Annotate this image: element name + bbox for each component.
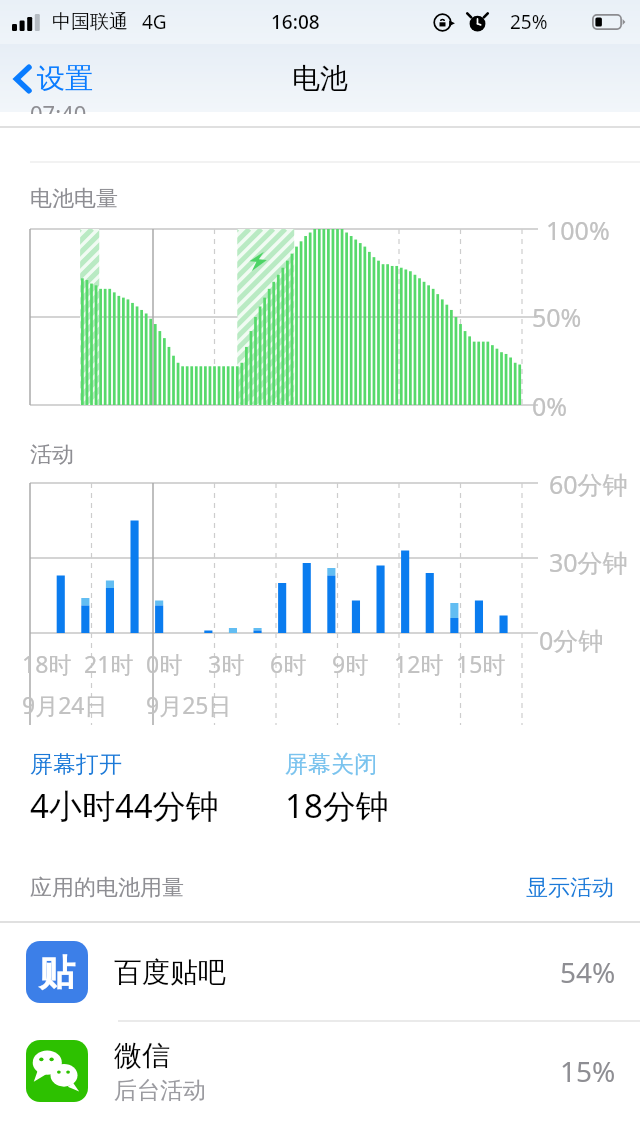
other: Alarm [467,12,488,33]
staticText: 活动 [30,441,74,469]
staticText: 21时 [84,648,134,679]
staticText: 0时 [146,648,183,679]
button[interactable]: 显示活动 [522,868,618,908]
staticText: 显示活动 [526,874,614,902]
staticText: 后台活动 [114,1076,206,1105]
staticText: 07:40 [30,98,87,114]
staticText: 0分钟 [539,623,604,657]
staticText: 18时 [22,648,72,679]
staticText: 18分钟 [285,783,389,828]
staticText: 屏幕关闭 [285,750,377,779]
staticText: 15% [560,1052,616,1090]
staticText: 9月24日 [22,689,108,720]
staticText: 15时 [456,648,506,679]
staticText: 16:08 [271,9,320,35]
staticText: 3时 [208,648,245,679]
staticText: 中国联通 [52,10,128,34]
staticText: 屏幕打开 [30,750,122,779]
staticText: 4G [142,9,167,35]
staticText: 百度贴吧 [114,955,226,990]
staticText: 贴 [39,950,75,995]
button[interactable]: 贴 [0,923,640,1021]
staticText: 54% [560,953,616,991]
button[interactable]: 设置 [0,53,107,104]
staticText: 9时 [332,648,369,679]
staticText: 9月25日 [146,689,232,720]
staticText: 电池 [292,61,348,96]
staticText: 25% [510,9,548,35]
staticText: 30分钟 [549,545,628,579]
staticText: 50% [532,300,582,334]
other: Battery 25 percent [592,14,626,30]
staticText: 设置 [37,61,93,96]
staticText: 0% [532,389,568,423]
staticText: 4小时44分钟 [30,783,219,828]
other: Rotation lock [433,12,454,33]
staticText: 6时 [270,648,307,679]
staticText: 100% [546,213,610,247]
staticText: 12时 [394,648,444,679]
button[interactable]: 微信 [0,1022,640,1120]
staticText: 60分钟 [549,467,628,501]
staticText: 微信 [114,1038,170,1073]
staticText: 应用的电池用量 [30,874,184,902]
staticText: 电池电量 [30,185,118,213]
